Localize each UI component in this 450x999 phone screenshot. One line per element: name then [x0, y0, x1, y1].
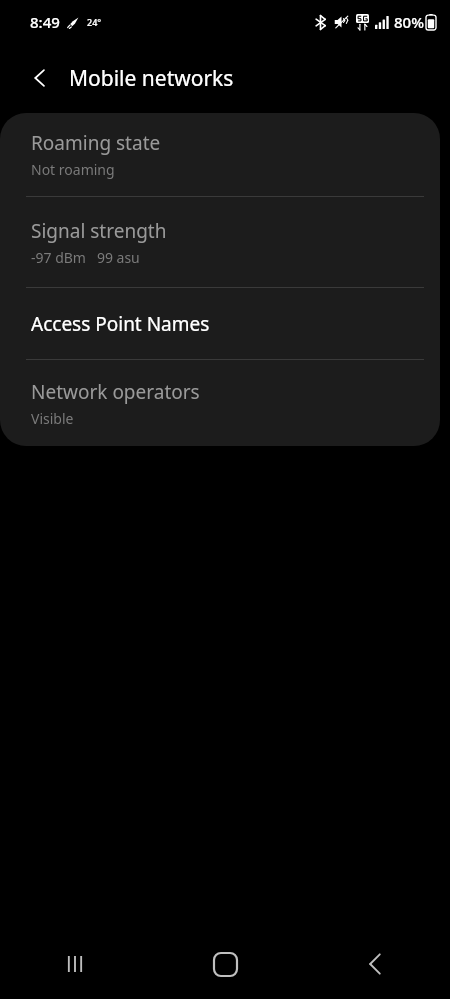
staticText: Not roaming [31, 160, 115, 179]
button[interactable]: Signal strength [0, 197, 440, 287]
button[interactable]: Access Point Names [0, 288, 440, 359]
button[interactable]: Back [300, 929, 450, 999]
staticText: 24° [87, 16, 102, 28]
staticText: Mobile networks [69, 64, 234, 93]
button[interactable]: Roaming state [0, 113, 440, 196]
staticText: Access Point Names [31, 311, 210, 337]
staticText: -97 dBm 99 asu [31, 248, 140, 267]
button[interactable]: Home [150, 929, 300, 999]
staticText: Roaming state [31, 130, 161, 156]
staticText: Visible [31, 409, 74, 428]
staticText: 8:49 [30, 12, 60, 32]
button[interactable]: Navigate up [20, 58, 60, 98]
button[interactable]: Network operators [0, 360, 440, 446]
staticText: Network operators [31, 379, 200, 405]
staticText: Signal strength [31, 218, 167, 244]
button[interactable]: Recent apps [0, 929, 150, 999]
staticText: 80% [394, 12, 424, 32]
